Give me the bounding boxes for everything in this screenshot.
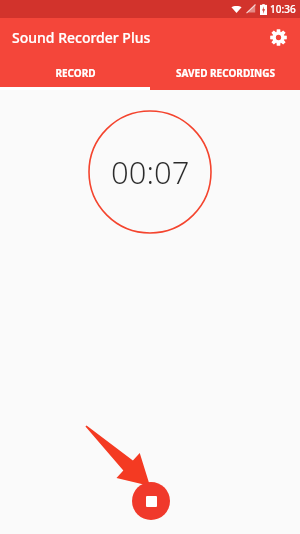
staticText: Sound Recorder Plus [12, 28, 151, 47]
staticText: RECORD [55, 66, 96, 80]
button[interactable]: RECORD [0, 56, 150, 90]
staticText: 10:36 [270, 2, 296, 16]
button[interactable]: SAVED RECORDINGS [150, 56, 300, 90]
staticText: SAVED RECORDINGS [176, 66, 275, 80]
button[interactable]: Settings [264, 23, 292, 51]
button[interactable]: Stop recording [132, 482, 170, 520]
staticText: 00:07 [111, 151, 190, 193]
